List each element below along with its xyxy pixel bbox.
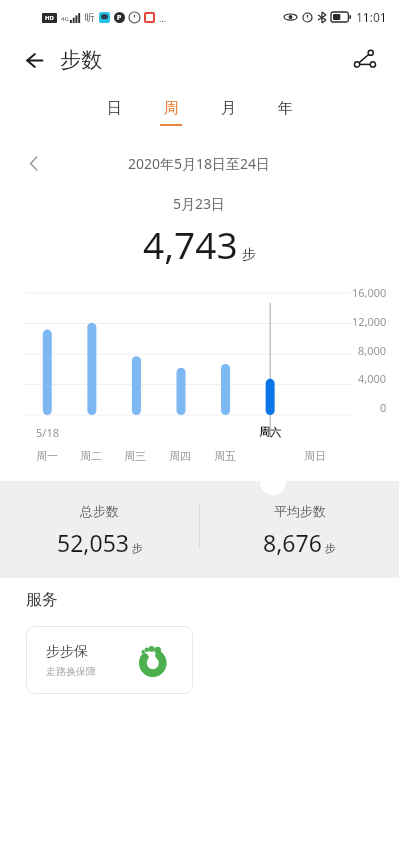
staticText: 步步保	[46, 643, 88, 661]
staticText: 周二	[80, 449, 102, 463]
staticText: 4G	[61, 15, 69, 23]
staticText: 4,000	[358, 371, 387, 386]
staticText: 年	[278, 99, 293, 118]
staticText: 步	[325, 541, 336, 555]
button[interactable]: 年	[267, 86, 303, 138]
staticText: 月	[221, 99, 236, 118]
staticText: 周四	[169, 449, 191, 463]
staticText: 周	[164, 99, 179, 118]
staticText: 周一	[36, 449, 58, 463]
button[interactable]: 平均步数	[200, 503, 399, 558]
staticText: 服务	[26, 590, 58, 610]
staticText: 周五	[214, 449, 236, 463]
staticText: 总步数	[80, 503, 119, 519]
staticText: 12,000	[352, 314, 387, 329]
staticText: 8,676	[263, 527, 322, 558]
staticText: 步	[242, 246, 256, 264]
staticText: 5月23日	[173, 194, 226, 213]
staticText: 0	[380, 400, 387, 415]
staticText: 日	[107, 99, 122, 118]
staticText: 周三	[124, 449, 146, 463]
staticText: 5/18	[36, 425, 59, 440]
button[interactable]: 日	[96, 86, 132, 138]
button[interactable]: 步步保	[26, 626, 193, 694]
staticText: 16,000	[352, 285, 387, 300]
staticText: P	[117, 13, 122, 23]
staticText: 8,000	[358, 343, 387, 358]
staticText: 11:01	[356, 9, 387, 25]
button[interactable]: 周	[153, 86, 189, 138]
staticText: 听	[85, 11, 95, 24]
staticText: 走路换保障	[46, 665, 96, 678]
staticText: 平均步数	[274, 503, 326, 519]
button[interactable]: 月	[210, 86, 246, 138]
staticText: 步数	[60, 47, 102, 73]
staticText: HD	[45, 14, 54, 22]
staticText: …	[159, 12, 167, 24]
button[interactable]: Share	[345, 40, 385, 80]
staticText: 52,053	[57, 527, 129, 558]
staticText: 2020年5月18日至24日	[128, 154, 271, 173]
staticText: 步	[132, 541, 143, 555]
staticText: 4,743	[143, 219, 238, 269]
staticText: 周日	[304, 449, 326, 463]
staticText: 周六	[259, 425, 281, 439]
button[interactable]: Previous week	[20, 149, 48, 177]
button[interactable]: 总步数	[0, 503, 199, 558]
button[interactable]: Back	[18, 44, 50, 76]
